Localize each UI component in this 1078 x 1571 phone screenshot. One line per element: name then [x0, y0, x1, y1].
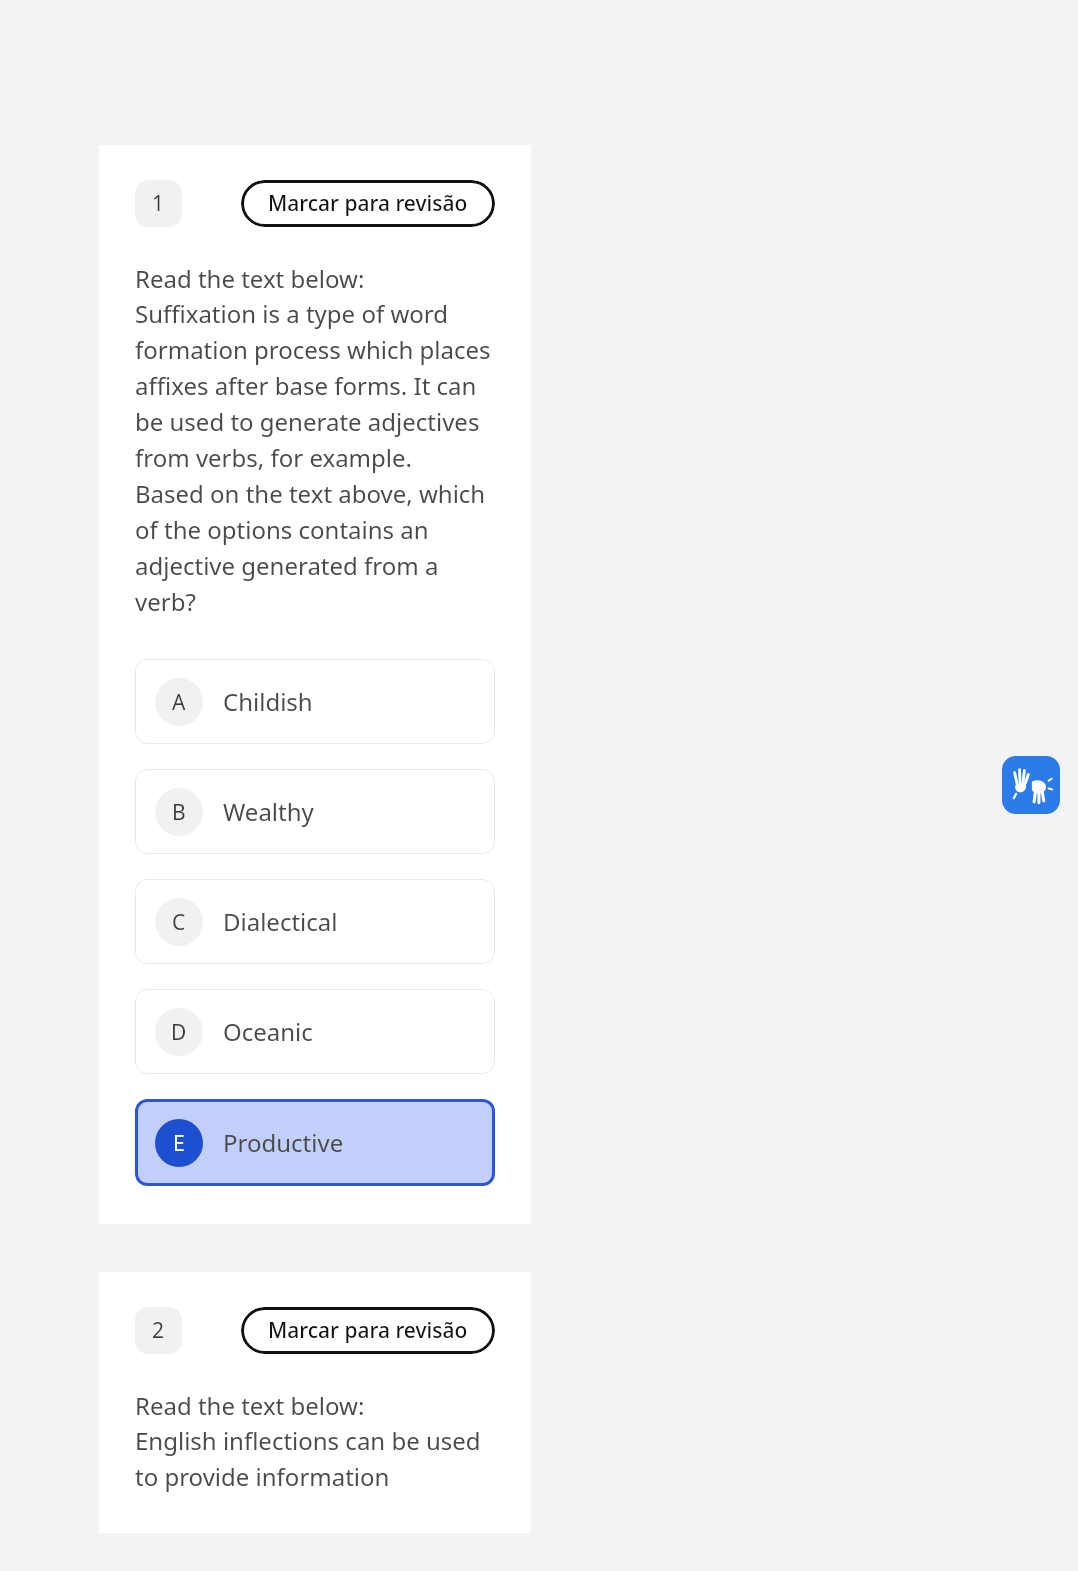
button[interactable]: Marcar para revisão [241, 180, 495, 227]
staticText: A [172, 688, 186, 717]
button[interactable]: 2 [135, 1307, 182, 1354]
staticText: Read the text below: English inflections… [135, 1389, 495, 1493]
staticText: Dialectical [223, 905, 338, 938]
button[interactable]: A [135, 659, 495, 744]
staticText: Productive [223, 1126, 344, 1159]
staticText: Childish [223, 685, 313, 718]
staticText: 1 [152, 189, 165, 218]
staticText: Wealthy [223, 795, 314, 828]
staticText: 2 [152, 1316, 165, 1345]
staticText: C [172, 908, 186, 937]
staticText: Read the text below: Suffixation is a ty… [135, 262, 495, 618]
button[interactable]: C [135, 879, 495, 964]
button[interactable]: Língua de sinais [1002, 756, 1060, 814]
staticText: Marcar para revisão [268, 189, 468, 218]
staticText: B [172, 798, 186, 827]
button[interactable]: 1 [135, 180, 182, 227]
button[interactable]: Marcar para revisão [241, 1307, 495, 1354]
button[interactable]: D [135, 989, 495, 1074]
staticText: D [171, 1018, 187, 1047]
staticText: Oceanic [223, 1015, 313, 1048]
staticText: E [173, 1129, 185, 1158]
button[interactable]: E [135, 1099, 495, 1186]
button[interactable]: B [135, 769, 495, 854]
staticText: Marcar para revisão [268, 1316, 468, 1345]
